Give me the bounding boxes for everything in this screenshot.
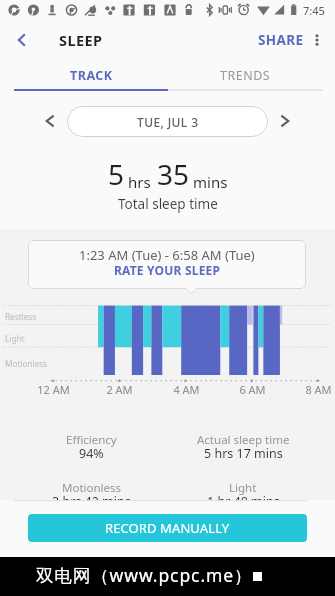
button[interactable]: TUE, JUL 3 bbox=[67, 106, 268, 137]
button[interactable]: Back bbox=[6, 24, 38, 56]
staticText: Motionless bbox=[5, 358, 48, 369]
staticText: 4 AM bbox=[173, 382, 200, 397]
staticText: 94% bbox=[79, 445, 104, 462]
staticText: 7:45 bbox=[303, 3, 325, 18]
button[interactable]: SHARE bbox=[254, 23, 308, 57]
staticText: SHARE bbox=[258, 31, 304, 49]
staticText: Restless bbox=[5, 311, 37, 322]
staticText: 1:23 AM (Tue) - 6:58 AM (Tue) bbox=[79, 246, 255, 264]
button[interactable]: Next day bbox=[271, 107, 299, 135]
staticText: RATE YOUR SLEEP bbox=[114, 262, 221, 278]
button[interactable]: TRACK bbox=[14, 60, 168, 90]
staticText: 12 AM bbox=[37, 382, 70, 397]
staticText: 35 bbox=[157, 155, 190, 193]
staticText: mins bbox=[193, 172, 228, 192]
staticText: Light bbox=[5, 333, 25, 344]
button[interactable]: TRENDS bbox=[168, 60, 323, 90]
staticText: Actual sleep time bbox=[197, 432, 290, 448]
staticText: RECORD MANUALLY bbox=[105, 519, 230, 537]
button[interactable]: Previous day bbox=[36, 107, 64, 135]
staticText: Total sleep time bbox=[118, 195, 218, 213]
staticText: 5 hrs 17 mins bbox=[204, 445, 283, 462]
staticText: TUE, JUL 3 bbox=[137, 114, 199, 130]
staticText: 3 hrs 42 mins bbox=[52, 493, 131, 500]
staticText: SLEEP bbox=[59, 30, 103, 50]
staticText: hrs bbox=[128, 172, 151, 192]
staticText: 1 hr 48 mins bbox=[207, 493, 280, 500]
staticText: 6 AM bbox=[239, 382, 266, 397]
staticText: Motionless bbox=[62, 480, 122, 496]
staticText: 8 AM bbox=[305, 382, 332, 397]
staticText: TRACK bbox=[70, 67, 113, 84]
staticText: TRENDS bbox=[220, 67, 271, 84]
button[interactable]: 1:23 AM (Tue) - 6:58 AM (Tue) bbox=[28, 240, 306, 289]
staticText: 2 AM bbox=[106, 382, 133, 397]
staticText: 5 bbox=[108, 155, 125, 193]
staticText: Light bbox=[229, 480, 257, 496]
staticText: 双电网（www.pcpc.me） bbox=[36, 563, 253, 587]
button[interactable]: RECORD MANUALLY bbox=[28, 514, 307, 542]
staticText: Efficiency bbox=[66, 432, 117, 448]
button[interactable]: More options bbox=[303, 26, 331, 54]
